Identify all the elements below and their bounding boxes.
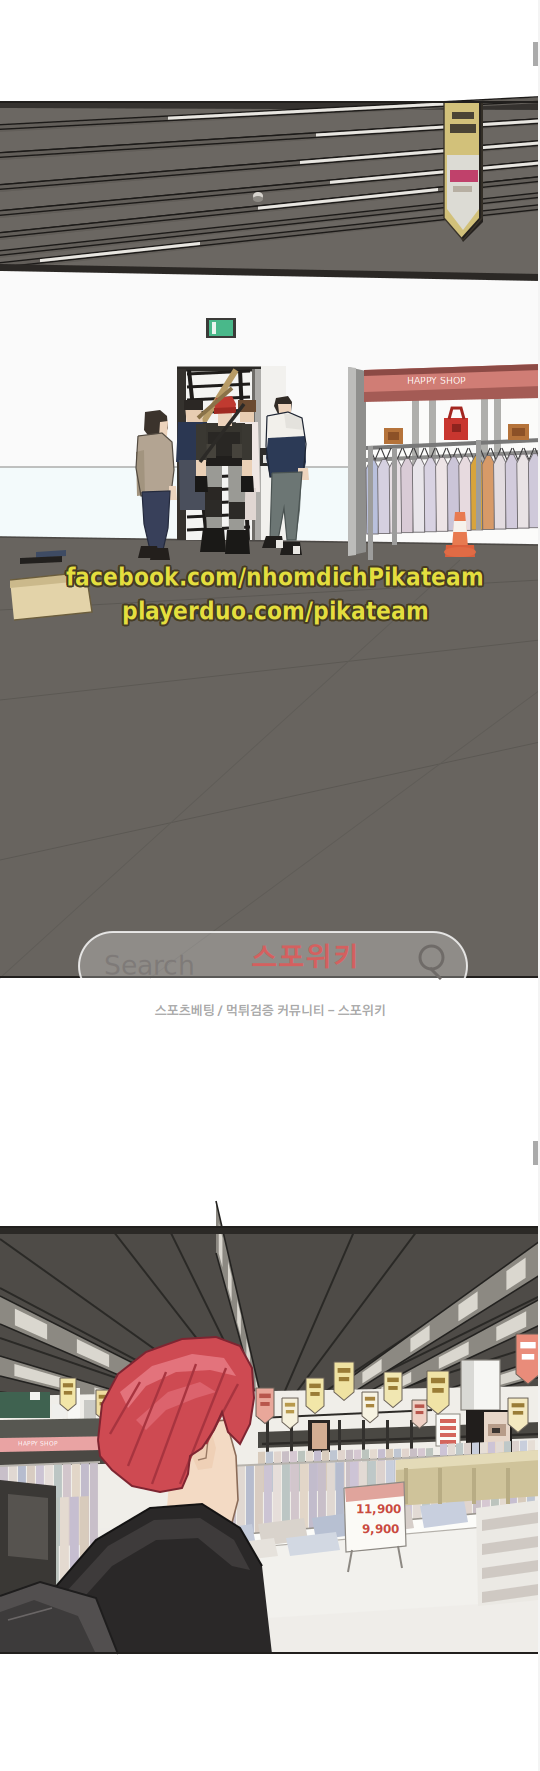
staticText: Search [104,950,195,981]
button[interactable] [79,932,467,1000]
staticText: facebook.com/nhomdichPikateam [67,564,485,593]
staticText: 9,900 [362,1522,399,1536]
staticText: playerduo.com/pikateam [124,597,431,625]
staticText: facebook.com/nhomdichPikateam [67,561,485,590]
staticText: facebook.com/nhomdichPikateam [66,565,484,593]
staticText: playerduo.com/pikateam [122,599,429,627]
staticText: playerduo.com/pikateam [120,597,427,625]
staticText: playerduo.com/pikateam [122,595,429,623]
staticText: playerduo.com/pikateam [120,595,427,624]
staticText: playerduo.com/pikateam [122,597,429,625]
staticText: facebook.com/nhomdichPikateam [64,561,482,590]
staticText: 스포츠베팅 / 먹튀검증 커뮤니티 - 스포위키 [154,1005,385,1017]
staticText: playerduo.com/pikateam [120,598,427,627]
staticText: HAPPY SHOP [18,1440,58,1447]
staticText: HAPPY SHOP [407,375,466,386]
staticText: facebook.com/nhomdichPikateam [68,563,486,591]
staticText: facebook.com/nhomdichPikateam [66,563,484,591]
staticText: facebook.com/nhomdichPikateam [66,561,484,589]
staticText: playerduo.com/pikateam [123,598,430,627]
staticText: 11,900 [356,1502,401,1516]
staticText: 스포위키 [251,945,359,972]
staticText: facebook.com/nhomdichPikateam [64,564,482,593]
staticText: facebook.com/nhomdichPikateam [64,563,482,591]
staticText: playerduo.com/pikateam [123,595,430,624]
